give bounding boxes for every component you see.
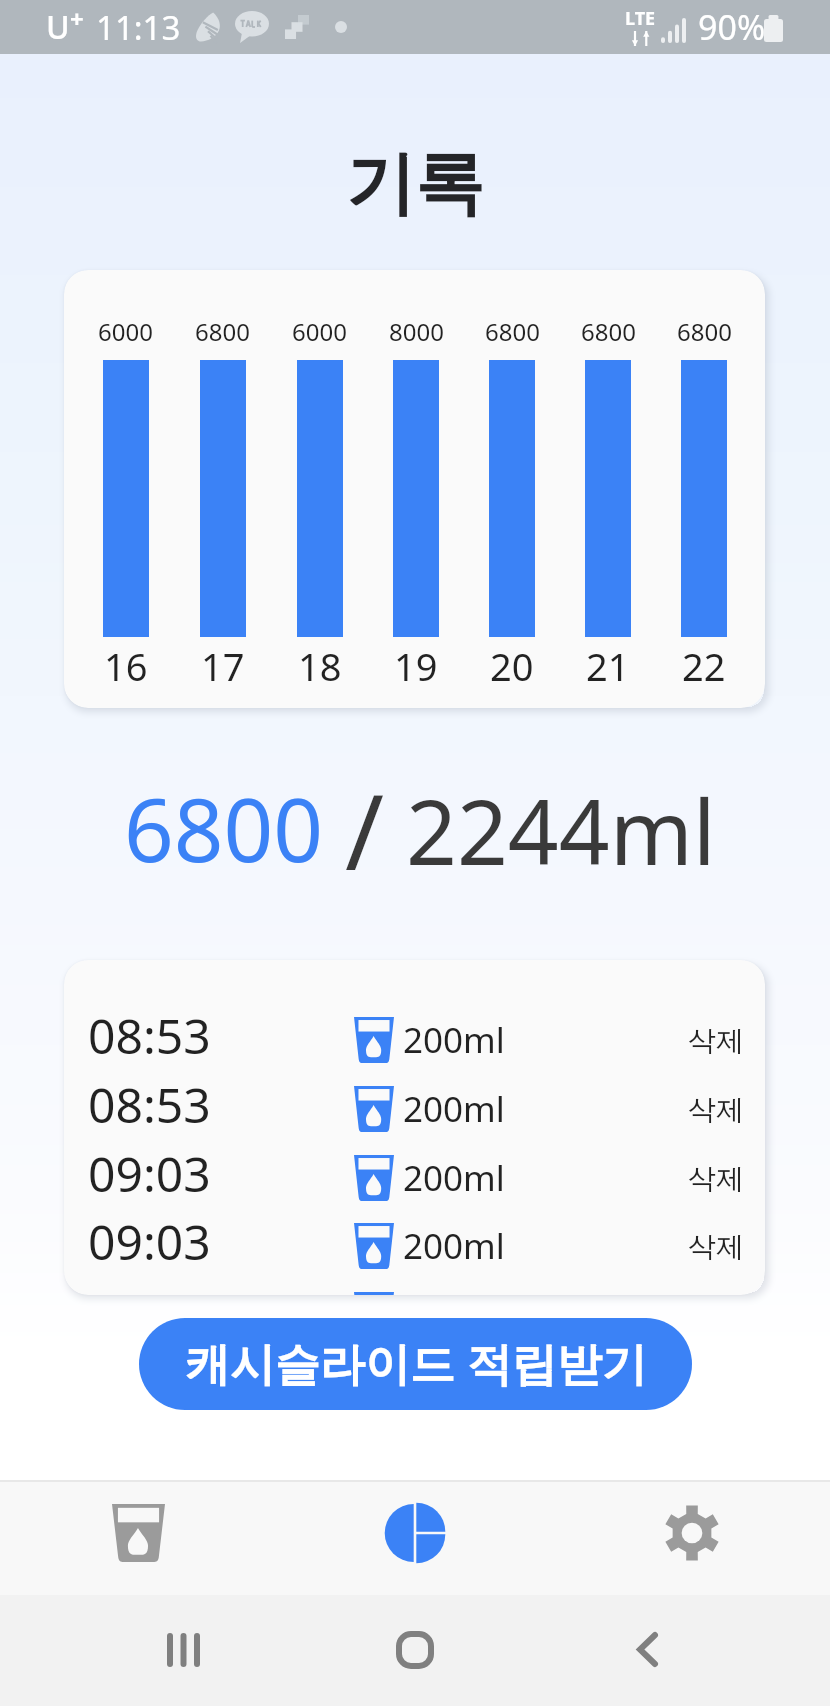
staticText: 09:03 — [88, 1209, 211, 1274]
staticText: 6800 — [124, 769, 324, 887]
staticText: 삭제 — [688, 1092, 744, 1127]
staticText: 09:03 — [88, 1141, 211, 1206]
staticText: 6800 — [581, 315, 636, 348]
staticText: 22 — [682, 640, 726, 692]
staticText: 삭제 — [688, 1229, 744, 1264]
staticText: 17 — [201, 640, 245, 692]
staticText: 6800 — [485, 315, 540, 348]
button[interactable] — [64, 1280, 765, 1295]
button[interactable]: 08:53 — [64, 1074, 765, 1144]
staticText: 8000 — [389, 315, 444, 348]
staticText: / — [345, 758, 385, 901]
button[interactable]: Recent apps — [123, 1595, 243, 1706]
staticText: 6800 — [677, 315, 732, 348]
button[interactable]: 09:03 — [64, 1211, 765, 1281]
staticText: 6000 — [292, 315, 347, 348]
button[interactable]: Settings — [553, 1480, 830, 1595]
staticText: 90% — [698, 4, 766, 50]
staticText: 200ml — [403, 1016, 505, 1064]
staticText: 08:53 — [88, 1072, 211, 1137]
staticText: 200ml — [403, 1085, 505, 1133]
button[interactable]: Water intake — [0, 1480, 276, 1595]
staticText: U — [46, 5, 70, 49]
button[interactable]: Home — [355, 1595, 475, 1706]
staticText: 200ml — [403, 1154, 505, 1202]
button[interactable]: 08:53 — [64, 1005, 765, 1075]
staticText: 19 — [394, 640, 438, 692]
staticText: LTE — [625, 6, 656, 31]
staticText: + — [70, 2, 84, 35]
staticText: 200ml — [403, 1222, 505, 1270]
staticText: 08:53 — [88, 1003, 211, 1068]
staticText: 21 — [586, 640, 630, 692]
button[interactable]: 캐시슬라이드 적립받기 — [139, 1318, 692, 1410]
staticText: 삭제 — [688, 1161, 744, 1196]
staticText: 20 — [490, 640, 534, 692]
staticText: 2244ml — [406, 770, 716, 891]
staticText: 11:13 — [96, 5, 181, 50]
staticText: 삭제 — [688, 1023, 744, 1058]
button[interactable]: Statistics — [276, 1480, 553, 1595]
staticText: 6000 — [98, 315, 153, 348]
button[interactable]: 09:03 — [64, 1143, 765, 1213]
staticText: 캐시슬라이드 적립받기 — [185, 1332, 647, 1393]
button[interactable]: Back — [587, 1595, 707, 1706]
staticText: 16 — [104, 640, 148, 692]
staticText: 기록 — [0, 141, 830, 228]
staticText: 6800 — [195, 315, 250, 348]
staticText: 18 — [298, 640, 342, 692]
